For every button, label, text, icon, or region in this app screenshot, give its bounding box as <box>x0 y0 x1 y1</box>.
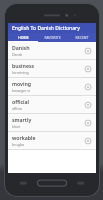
staticText: officie <box>12 106 22 111</box>
staticText: FAVORITE <box>44 35 61 40</box>
button[interactable]: Add official to favorites <box>83 100 92 109</box>
button[interactable]: HOME <box>8 33 38 42</box>
button[interactable]: Add workable to favorites <box>83 136 92 145</box>
button[interactable]: smartly <box>8 114 96 131</box>
button[interactable]: business <box>8 60 96 77</box>
staticText: forretning <box>12 70 29 75</box>
button[interactable]: FAVORITE <box>38 33 67 42</box>
staticText: brugba <box>12 142 25 147</box>
staticText: bevæger si <box>12 88 30 93</box>
button[interactable]: Add business to favorites <box>83 64 92 73</box>
button[interactable]: Add smartly to favorites <box>83 118 92 127</box>
button[interactable]: official <box>8 96 96 113</box>
button[interactable]: workable <box>8 132 96 149</box>
staticText: business <box>12 62 35 69</box>
button[interactable]: English To Danish Dictionary <box>8 23 96 33</box>
staticText: Dansk <box>12 52 23 57</box>
button[interactable]: Danish <box>8 42 96 59</box>
staticText: HOME <box>18 35 29 40</box>
staticText: English To Danish Dictionary <box>12 25 80 32</box>
staticText: Danish <box>12 44 30 51</box>
staticText: smartly <box>12 116 32 123</box>
button[interactable]: moving <box>8 78 96 95</box>
staticText: workable <box>12 134 36 141</box>
staticText: official <box>12 98 30 105</box>
button[interactable]: Add moving to favorites <box>83 82 92 91</box>
staticText: moving <box>12 80 31 87</box>
staticText: RECENT <box>75 35 89 40</box>
button[interactable]: RECENT <box>67 33 96 42</box>
staticText: kloet <box>12 124 21 129</box>
button[interactable]: Add Danish to favorites <box>83 46 92 55</box>
